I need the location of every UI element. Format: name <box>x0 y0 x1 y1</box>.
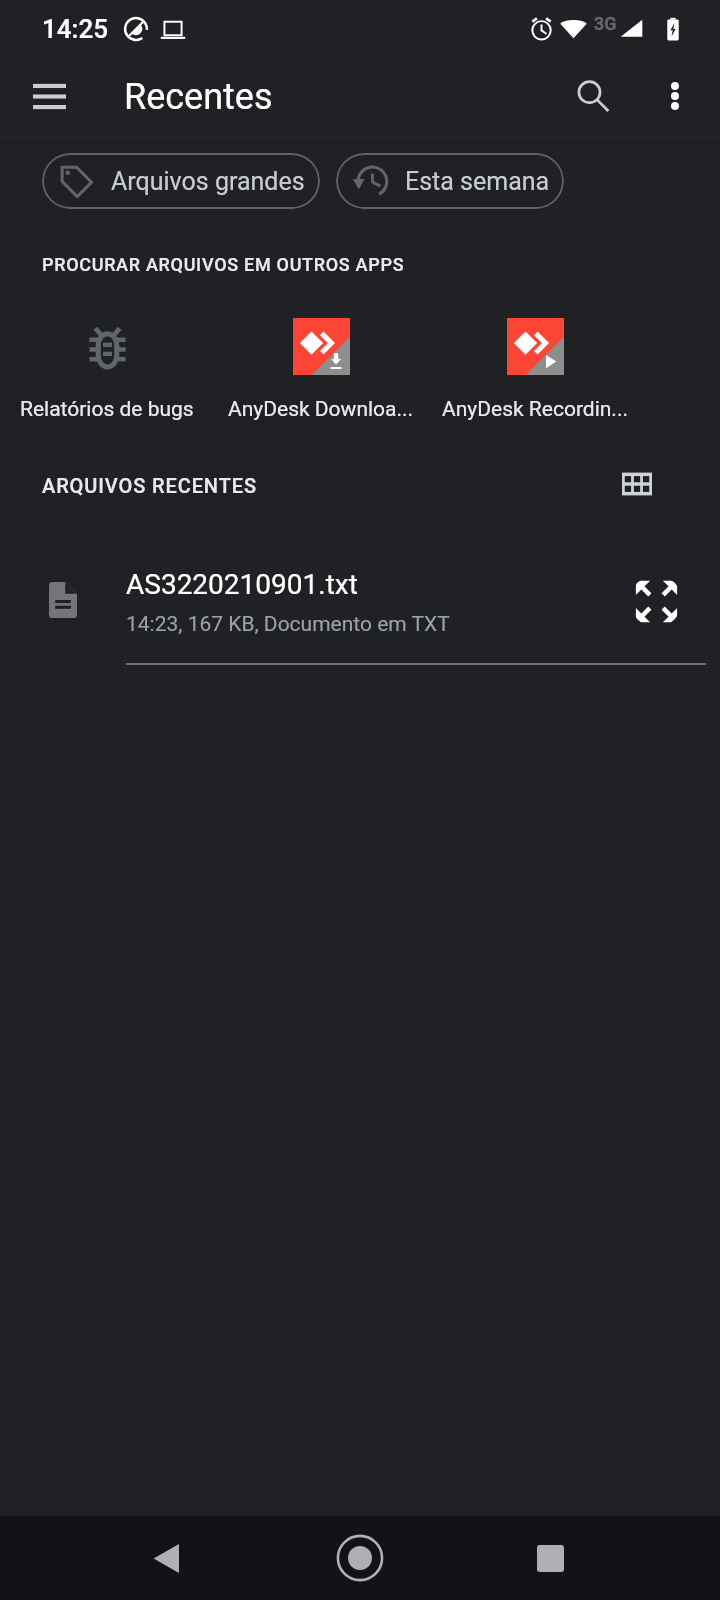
staticText: Arquivos grandes <box>111 167 305 196</box>
button[interactable]: Arquivos grandes <box>42 153 320 209</box>
staticText: AS3220210901.txt <box>126 568 358 601</box>
staticText: ARQUIVOS RECENTES <box>42 474 257 497</box>
staticText: Esta semana <box>405 167 550 196</box>
button[interactable]: Grid view <box>609 456 665 512</box>
button[interactable]: AnyDesk Recordin... <box>428 318 642 422</box>
button[interactable]: Menu <box>21 68 77 124</box>
button[interactable]: Home <box>315 1516 405 1600</box>
button[interactable]: Relatórios de bugs <box>0 318 214 422</box>
staticText: 3G <box>594 13 617 34</box>
button[interactable]: Back <box>122 1516 212 1600</box>
staticText: AnyDesk Recordin... <box>442 397 628 422</box>
staticText: 14:23, 167 KB, Documento em TXT <box>126 612 450 637</box>
button[interactable]: AS3220210901.txt <box>0 548 720 654</box>
staticText: Relatórios de bugs <box>20 397 194 422</box>
button[interactable]: More options <box>647 68 703 124</box>
staticText: AnyDesk Downloa... <box>228 397 414 422</box>
button[interactable]: Expand <box>630 575 682 627</box>
button[interactable]: Recents <box>505 1516 595 1600</box>
staticText: 14:25 <box>42 14 109 44</box>
staticText: Recentes <box>124 76 273 118</box>
staticText: PROCURAR ARQUIVOS EM OUTROS APPS <box>42 254 405 275</box>
button[interactable]: Search <box>565 68 621 124</box>
button[interactable]: Esta semana <box>336 153 564 209</box>
button[interactable]: AnyDesk Downloa... <box>214 318 428 422</box>
